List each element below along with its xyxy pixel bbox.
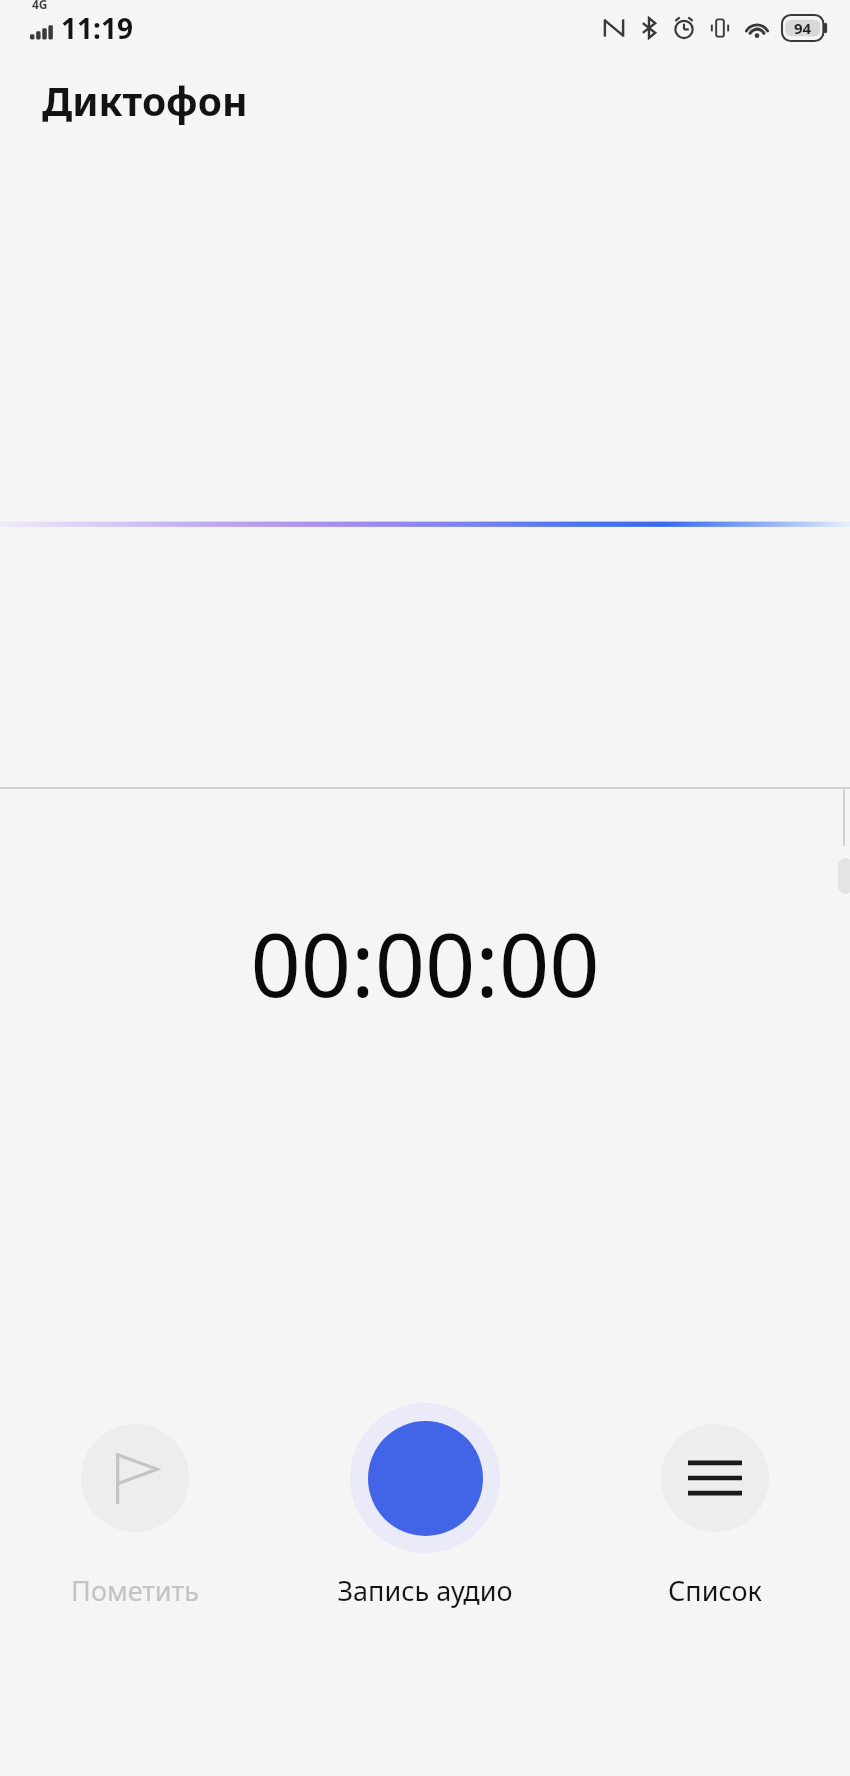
staticText: Запись аудио [337, 1572, 513, 1609]
button[interactable]: Запись аудио [327, 1402, 523, 1609]
staticText: 4G [32, 0, 48, 12]
button[interactable]: Пометить [37, 1402, 233, 1609]
staticText: Список [668, 1572, 762, 1609]
staticText: 94 [794, 18, 812, 38]
staticText: 00:00:00 [0, 903, 850, 1023]
button[interactable]: Список [617, 1402, 813, 1609]
staticText: Диктофон [42, 74, 248, 127]
staticText: 11:19 [61, 9, 133, 47]
staticText: Пометить [71, 1572, 199, 1609]
